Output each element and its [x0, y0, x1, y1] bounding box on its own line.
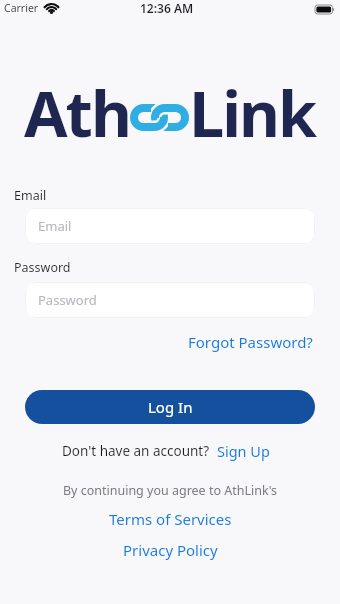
- button[interactable]: Password: [25, 282, 315, 318]
- staticText: Privacy Policy: [123, 540, 218, 560]
- staticText: Password: [38, 291, 97, 309]
- staticText: Link: [189, 70, 316, 156]
- button[interactable]: Forgot Password?: [188, 332, 313, 352]
- staticText: Forgot Password?: [188, 332, 313, 352]
- staticText: Email: [38, 217, 72, 235]
- staticText: 12:36 AM: [140, 0, 194, 16]
- button[interactable]: Privacy Policy: [123, 540, 218, 560]
- staticText: Terms of Services: [109, 509, 232, 529]
- button[interactable]: Email: [25, 208, 315, 244]
- staticText: Carrier: [4, 1, 39, 15]
- staticText: Log In: [148, 397, 193, 417]
- staticText: Sign Up: [217, 441, 270, 461]
- staticText: Email: [14, 187, 47, 204]
- button[interactable]: Sign Up: [217, 441, 270, 461]
- staticText: Don't have an account?: [62, 442, 210, 460]
- button[interactable]: Terms of Services: [109, 509, 232, 529]
- staticText: By continuing you agree to AthLink's: [0, 482, 340, 499]
- staticText: Password: [14, 259, 71, 276]
- button[interactable]: Log In: [25, 390, 315, 424]
- staticText: Ath: [24, 70, 130, 156]
